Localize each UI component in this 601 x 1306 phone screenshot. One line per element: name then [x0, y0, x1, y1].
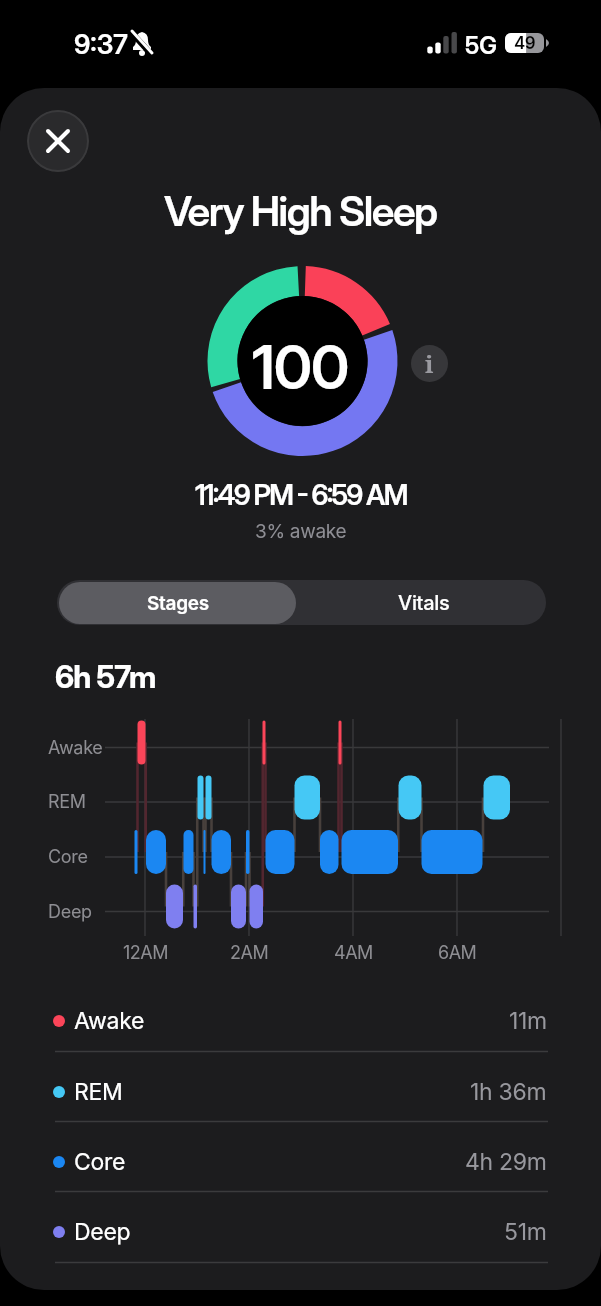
staticText: REM: [74, 1078, 123, 1106]
button[interactable]: Vitals: [302, 580, 546, 625]
staticText: 11:49 PM - 6:59 AM: [195, 478, 407, 512]
staticText: 49: [514, 33, 536, 53]
button[interactable]: i: [411, 345, 448, 382]
staticText: Stages: [147, 592, 209, 615]
button[interactable]: Deep: [0, 1197, 601, 1267]
staticText: Deep: [48, 901, 92, 923]
staticText: 9:37: [74, 28, 128, 61]
staticText: 5G: [465, 31, 497, 60]
button[interactable]: Stages: [59, 582, 296, 624]
staticText: Very High Sleep: [164, 186, 437, 236]
button[interactable]: REM: [0, 1057, 601, 1127]
staticText: Vitals: [398, 591, 450, 615]
button[interactable]: [27, 110, 89, 172]
staticText: 3% awake: [255, 520, 347, 543]
staticText: Awake: [74, 1007, 145, 1035]
staticText: Deep: [74, 1218, 131, 1246]
staticText: 100: [252, 331, 349, 391]
staticText: 6AM: [438, 942, 477, 964]
staticText: Awake: [48, 737, 103, 759]
button[interactable]: Awake: [0, 986, 601, 1056]
staticText: 12AM: [123, 942, 168, 964]
staticText: 6h 57m: [55, 658, 156, 696]
staticText: Core: [74, 1148, 126, 1176]
staticText: i: [425, 347, 434, 380]
staticText: Core: [48, 846, 88, 868]
staticText: 51m: [504, 1218, 547, 1246]
staticText: 11m: [509, 1007, 547, 1035]
button[interactable]: Core: [0, 1127, 601, 1197]
staticText: 1h 36m: [470, 1078, 547, 1106]
staticText: REM: [48, 791, 86, 813]
staticText: 4AM: [334, 942, 373, 964]
staticText: 4h 29m: [465, 1148, 547, 1176]
staticText: 2AM: [230, 942, 269, 964]
